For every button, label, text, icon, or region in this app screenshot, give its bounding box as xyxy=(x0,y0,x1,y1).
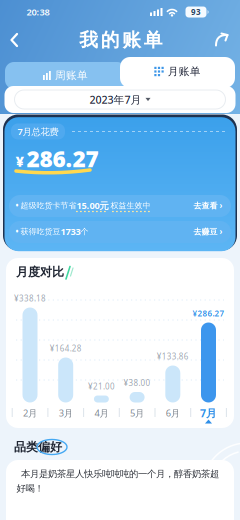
staticText: 6月 xyxy=(166,407,180,419)
staticText: 3月 xyxy=(59,407,73,419)
staticText: ¥38.00 xyxy=(124,378,151,388)
staticText: 15.00元 xyxy=(76,199,108,212)
staticText: 7月总花费 xyxy=(17,125,58,138)
button[interactable]: 去查看 › xyxy=(186,195,230,215)
staticText: 5月 xyxy=(130,407,144,419)
staticText: 去赚豆 › xyxy=(193,226,222,237)
staticText: 月账单 xyxy=(168,65,201,78)
staticText: 周账单 xyxy=(55,69,88,82)
staticText: 2023年7月 xyxy=(89,92,141,107)
staticText: 286.27 xyxy=(26,143,98,173)
staticText: 好喝！ xyxy=(16,483,43,494)
button[interactable] xyxy=(9,195,231,217)
staticText: 去查看 › xyxy=(193,200,222,211)
staticText: 我的账单 xyxy=(79,28,163,51)
button[interactable]: Back xyxy=(0,0,240,520)
staticText: 1733 xyxy=(60,225,80,238)
button[interactable]: 2023年7月 xyxy=(14,89,226,109)
staticText: 获得吃货豆 xyxy=(20,227,60,236)
staticText: 20:38 xyxy=(26,6,49,18)
staticText: ¥286.27 xyxy=(192,308,224,319)
staticText: 超级吃货卡节省 xyxy=(20,201,76,210)
button[interactable] xyxy=(9,221,231,243)
staticText: 7月 xyxy=(200,406,217,420)
staticText: • xyxy=(15,200,20,211)
staticText: 个 xyxy=(80,227,88,236)
staticText: ¥21.00 xyxy=(88,381,115,392)
staticText: 本月是奶茶星人快乐吨吨吨的一个月，醇香奶茶超 xyxy=(21,468,219,480)
staticText: 权益生效中 xyxy=(108,201,150,210)
button[interactable]: 月账单 xyxy=(120,57,235,88)
staticText: ¥338.18 xyxy=(14,293,46,304)
staticText: ¥ xyxy=(15,151,24,171)
button[interactable]: Share xyxy=(0,0,240,520)
staticText: 93 xyxy=(191,7,201,17)
staticText: 品类偏好 xyxy=(14,440,62,454)
staticText: 月度对比 xyxy=(16,265,64,279)
staticText: 4月 xyxy=(94,407,108,419)
staticText: • xyxy=(15,226,20,237)
staticText: 2月 xyxy=(23,407,37,419)
staticText: ¥133.86 xyxy=(157,351,189,362)
button[interactable]: 周账单 xyxy=(5,62,126,89)
button[interactable]: 去赚豆 › xyxy=(186,221,230,241)
staticText: ¥164.28 xyxy=(50,343,82,354)
